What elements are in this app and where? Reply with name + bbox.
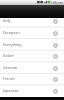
button[interactable]: European	[0, 27, 64, 39]
button[interactable]: German	[0, 62, 64, 74]
staticText: Italian	[3, 53, 53, 58]
staticText: French	[3, 76, 53, 81]
button[interactable]: Everything	[0, 39, 64, 51]
button[interactable]: Italian	[0, 50, 64, 62]
staticText: 11:46 pm	[48, 0, 63, 5]
staticText: Italy	[3, 18, 53, 23]
button[interactable]: Japanese	[0, 85, 64, 97]
staticText: Japanese	[3, 88, 53, 93]
staticText: Everything	[3, 42, 53, 47]
other: Status icons	[37, 0, 48, 5]
button[interactable]: French	[0, 73, 64, 85]
staticText: European	[3, 30, 53, 35]
button[interactable]: Italy	[0, 15, 64, 27]
staticText: German	[3, 65, 53, 70]
